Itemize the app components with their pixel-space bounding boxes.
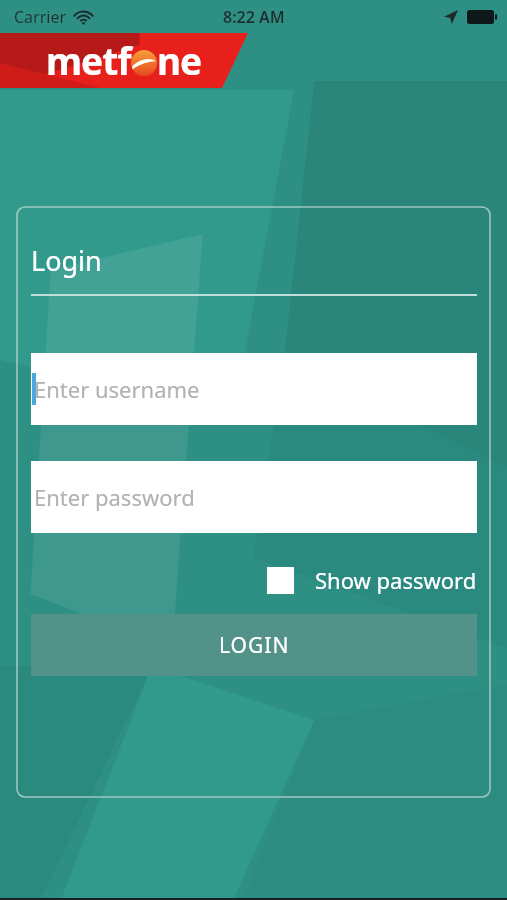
staticText: metf	[46, 35, 131, 85]
staticText: Login	[31, 242, 102, 279]
button[interactable]: Show password	[267, 565, 477, 595]
staticText: 8:22 AM	[223, 6, 285, 28]
staticText: Carrier	[14, 6, 67, 28]
staticText: ne	[157, 35, 202, 85]
staticText: Enter password	[34, 482, 195, 512]
staticText: Show password	[315, 565, 477, 595]
button[interactable]: Enter username	[31, 353, 477, 425]
button[interactable]: Enter password	[31, 461, 477, 533]
staticText: LOGIN	[219, 631, 290, 660]
button[interactable]: LOGIN	[31, 614, 477, 676]
staticText: Enter username	[34, 374, 200, 404]
